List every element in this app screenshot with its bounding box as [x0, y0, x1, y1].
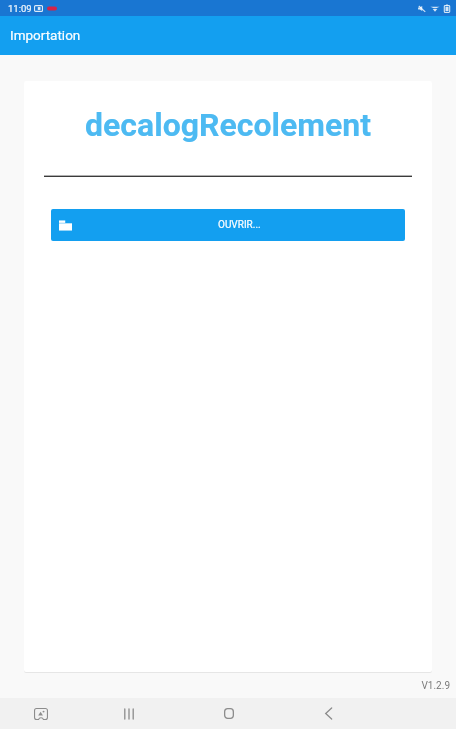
staticText: Importation	[10, 27, 81, 43]
button[interactable]: Screenshot	[25, 698, 56, 729]
staticText: decalogRecolement	[24, 106, 432, 144]
button[interactable]: OUVRIR...	[51, 209, 405, 241]
button[interactable]: Home	[206, 698, 251, 729]
staticText: OUVRIR...	[218, 219, 261, 231]
staticText: 11:09	[8, 3, 32, 14]
button[interactable]: Recents	[106, 698, 151, 729]
button[interactable]: Back	[306, 698, 351, 729]
staticText: V1.2.9	[0, 680, 450, 692]
